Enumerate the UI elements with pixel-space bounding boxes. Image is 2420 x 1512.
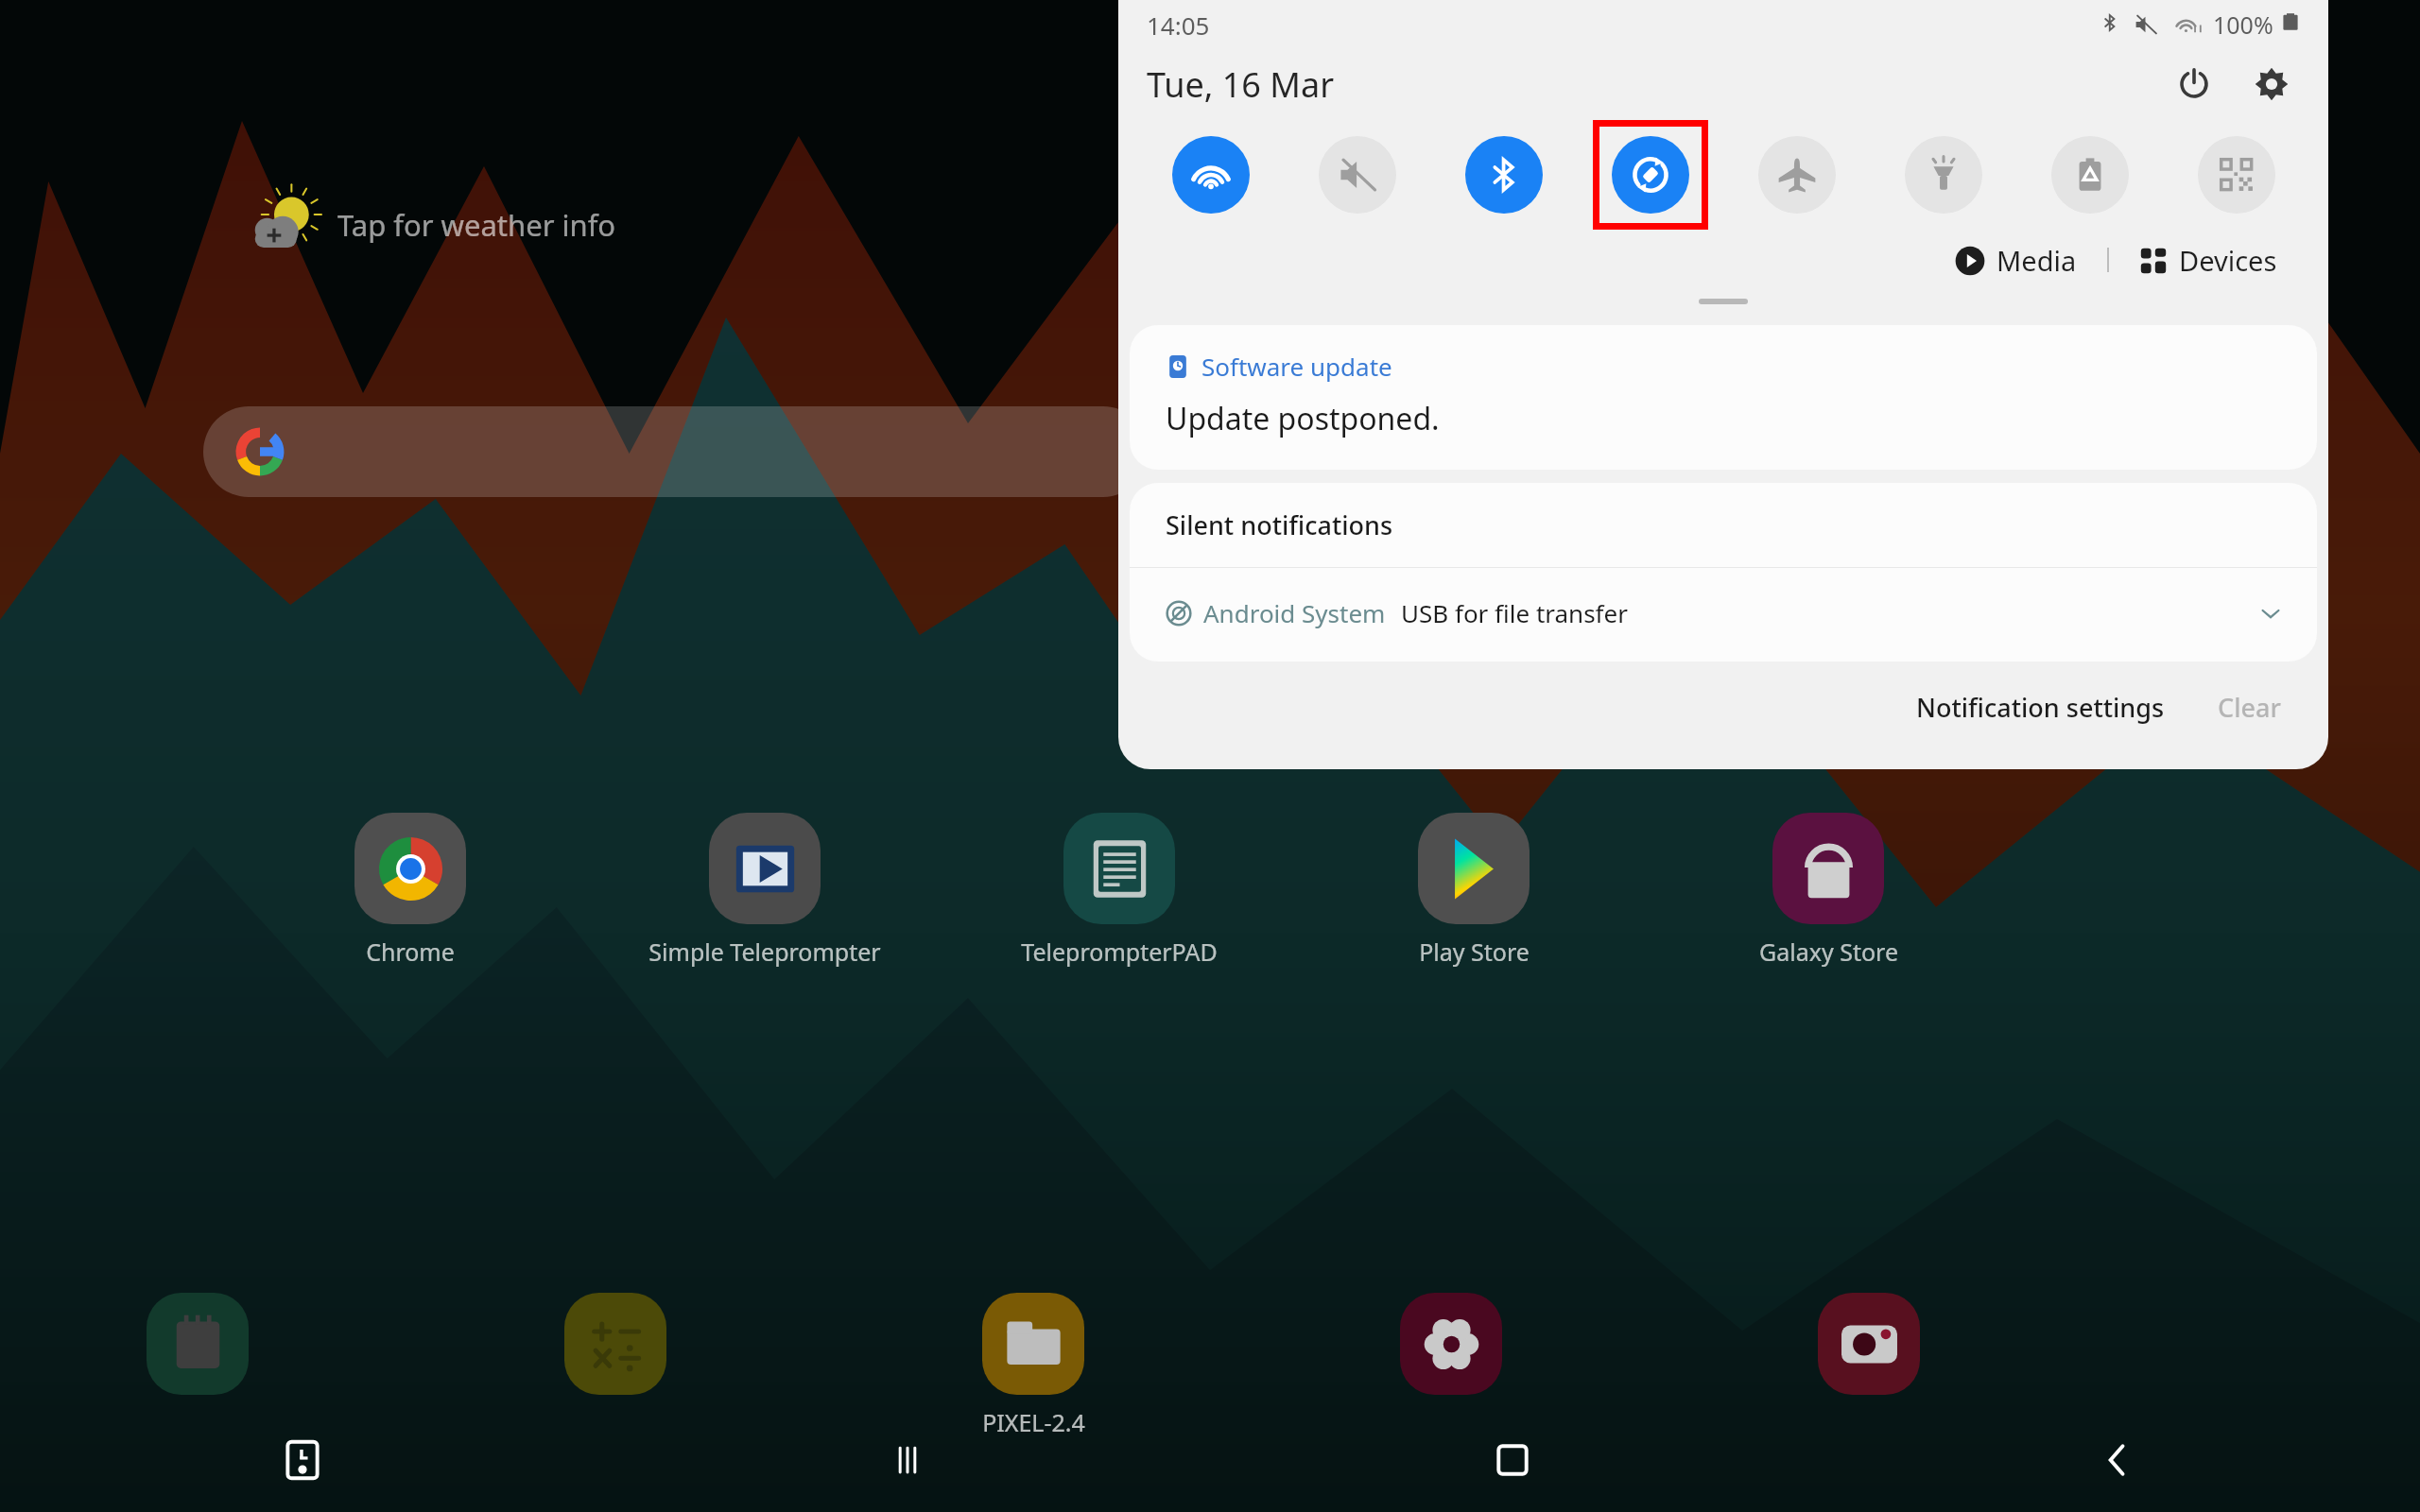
button[interactable]: Devices [2134, 242, 2283, 279]
button[interactable]: TeleprompterPAD [954, 813, 1285, 968]
button[interactable] [1718, 1293, 2020, 1395]
button[interactable]: Flashlight [1905, 136, 1982, 214]
button[interactable]: Power saving [2051, 136, 2129, 214]
button[interactable]: Airplane mode [1758, 136, 1836, 214]
button[interactable]: Home [1210, 1408, 1815, 1512]
staticText: Android System [1203, 596, 1386, 629]
staticText: 100% [2213, 9, 2273, 41]
staticText: USB for file transfer [1401, 596, 1628, 629]
staticText: Software update [1201, 350, 1392, 383]
button[interactable]: Bluetooth [1465, 136, 1543, 214]
button[interactable]: Galaxy Store [1663, 813, 1994, 968]
button[interactable]: Play Store [1308, 813, 1639, 968]
button[interactable]: PIXEL-2.4 [882, 1293, 1184, 1438]
staticText: Chrome [366, 936, 455, 968]
button[interactable]: Settings [2243, 56, 2300, 112]
button[interactable]: Power [2166, 56, 2222, 112]
button[interactable]: Simple Teleprompter [599, 813, 930, 968]
button[interactable]: Screenshot [0, 1408, 605, 1512]
staticText: Galaxy Store [1759, 936, 1898, 968]
staticText: Tap for weather info [337, 205, 616, 245]
button[interactable]: Software update [1130, 325, 2317, 470]
staticText: Silent notifications [1166, 507, 1393, 542]
button[interactable]: Tap for weather info [241, 181, 616, 268]
button[interactable]: Silent notifications [1130, 483, 2317, 567]
staticText: Media [1996, 242, 2077, 279]
staticText: Play Store [1419, 936, 1530, 968]
button[interactable]: Back [1815, 1408, 2420, 1512]
button[interactable] [464, 1293, 767, 1395]
staticText: Clear [2218, 690, 2281, 725]
button[interactable]: Android System [1130, 568, 2317, 661]
staticText: TeleprompterPAD [1021, 936, 1218, 968]
button[interactable] [203, 406, 1149, 497]
button[interactable]: Wi-Fi [1172, 136, 1250, 214]
button[interactable] [1300, 1293, 1602, 1395]
button[interactable]: Media [1949, 242, 2083, 279]
button[interactable]: Recents [605, 1408, 1210, 1512]
button[interactable] [46, 1293, 349, 1395]
staticText: Notification settings [1916, 690, 2165, 725]
staticText: 14:05 [1147, 9, 1210, 42]
button[interactable]: Notification settings [1907, 680, 2174, 734]
staticText: Tue, 16 Mar [1147, 61, 1335, 108]
button[interactable]: Scan QR code [2198, 136, 2275, 214]
button[interactable]: Sound off [1319, 136, 1396, 214]
staticText: Update postponed. [1166, 398, 1440, 439]
staticText: PIXEL-2.4 [982, 1406, 1085, 1438]
button[interactable]: Chrome [245, 813, 576, 968]
button[interactable]: Clear [2208, 680, 2290, 734]
button[interactable]: Auto rotate [1612, 136, 1689, 214]
staticText: Devices [2179, 242, 2277, 279]
staticText: Simple Teleprompter [648, 936, 881, 968]
